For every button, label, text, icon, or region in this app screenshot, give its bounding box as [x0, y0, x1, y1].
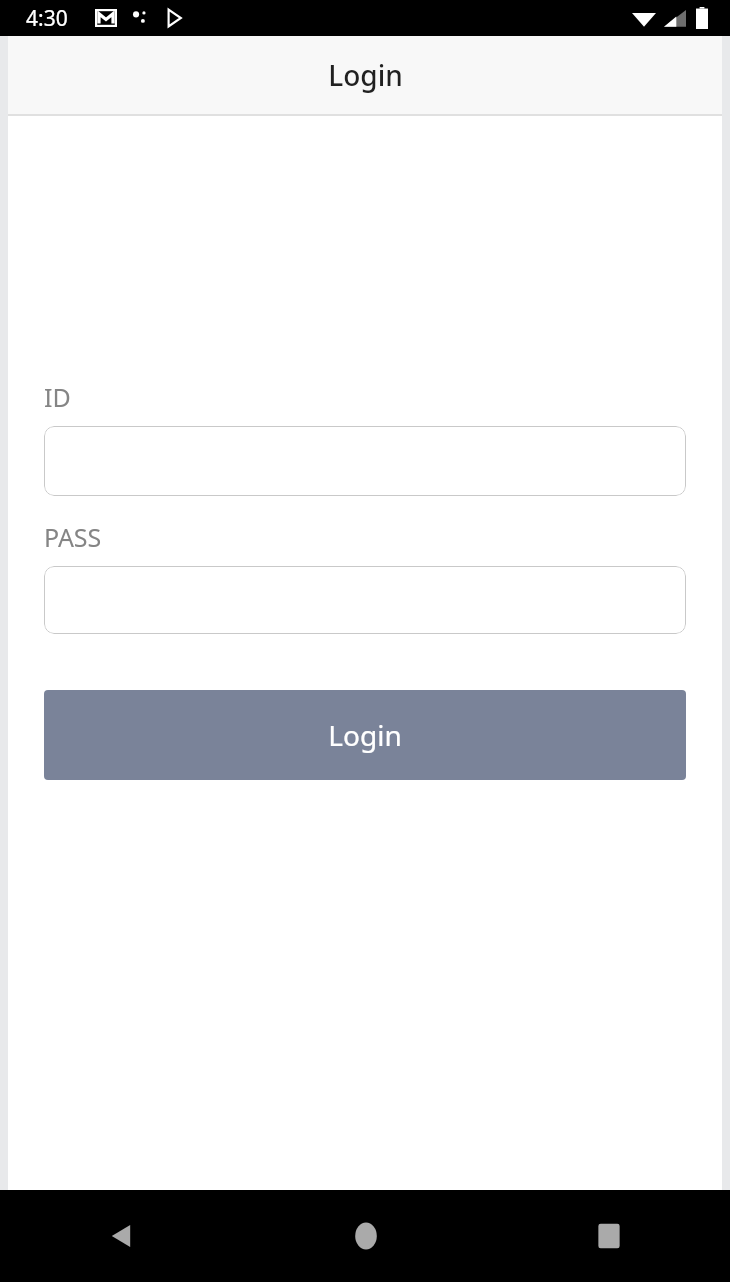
button[interactable]: [44, 566, 686, 634]
button[interactable]: Login: [44, 690, 686, 780]
staticText: Login: [328, 716, 402, 754]
button[interactable]: Recent apps: [487, 1190, 730, 1282]
staticText: 4:30: [26, 4, 68, 33]
staticText: ID: [44, 380, 71, 414]
staticText: PASS: [44, 520, 102, 554]
button[interactable]: Home: [244, 1190, 487, 1282]
button[interactable]: Back: [0, 1190, 244, 1282]
button[interactable]: [44, 426, 686, 496]
staticText: Login: [328, 56, 403, 94]
